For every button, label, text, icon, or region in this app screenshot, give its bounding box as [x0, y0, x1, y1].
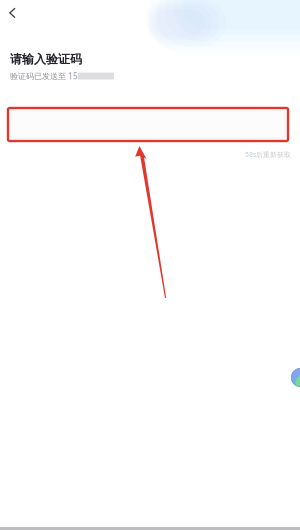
staticText: 验证码已发送至 15 — [10, 71, 78, 81]
button[interactable]: Back — [0, 0, 30, 28]
staticText: 58s后重新获取 — [245, 150, 291, 159]
staticText: 请输入验证码 — [10, 52, 82, 67]
button[interactable]: 58s后重新获取 — [245, 150, 291, 159]
